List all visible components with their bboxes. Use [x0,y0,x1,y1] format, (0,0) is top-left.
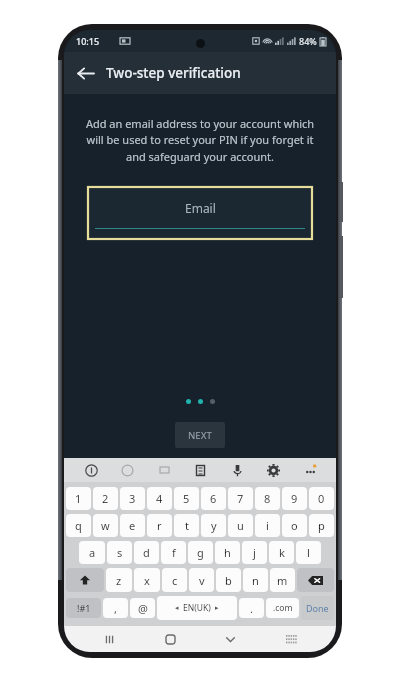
staticText: v [199,573,205,588]
button[interactable]: Voice input [227,460,247,480]
staticText: . [250,601,253,616]
button[interactable]: p [309,514,334,537]
staticText: b [225,573,232,588]
button[interactable]: NEXT [175,422,225,448]
button[interactable]: a [79,541,105,564]
staticText: 8 [264,491,271,506]
button[interactable]: 1 [66,487,91,510]
staticText: p [318,518,325,533]
button[interactable]: o [282,514,307,537]
button[interactable]: i [255,514,280,537]
button[interactable]: 2 [93,487,118,510]
button[interactable]: Emoji [117,460,137,480]
staticText: 7 [237,491,244,506]
button[interactable]: v [189,568,214,592]
button[interactable]: d [134,541,159,564]
button[interactable]: t [174,514,199,537]
button[interactable]: r [147,514,172,537]
staticText: h [224,545,231,560]
button[interactable]: !#1 [66,598,101,618]
button[interactable]: k [269,541,294,564]
staticText: 0 [318,491,325,506]
button[interactable]: Email [88,187,312,239]
staticText: c [172,573,178,588]
staticText: l [307,545,310,560]
button[interactable]: Hide keyboard [215,626,245,652]
staticText: w [101,518,110,533]
staticText: !#1 [77,602,91,614]
button[interactable]: Recent apps [94,626,124,652]
button[interactable]: @ [130,598,155,618]
staticText: ▸ [215,604,219,612]
button[interactable]: l [296,541,321,564]
staticText: 9 [291,491,298,506]
staticText: x [144,573,150,588]
button[interactable]: b [216,568,241,592]
button[interactable]: y [201,514,226,537]
button[interactable]: c [162,568,187,592]
staticText: 84% [299,35,317,47]
button[interactable]: Stickers [154,460,174,480]
staticText: @ [138,601,148,616]
staticText: m [277,573,288,588]
button[interactable]: 3 [120,487,145,510]
button[interactable]: z [106,568,132,592]
staticText: a [89,545,96,560]
button[interactable]: , [103,598,128,618]
button[interactable]: f [161,541,186,564]
staticText: g [197,545,204,560]
button[interactable]: s [107,541,132,564]
button[interactable]: Settings [263,460,283,480]
staticText: 3 [129,491,136,506]
staticText: Add an email address to your account whi… [78,116,322,165]
staticText: EN(UK) [183,602,211,614]
button[interactable]: More options [300,460,320,480]
button[interactable]: g [188,541,213,564]
button[interactable]: 4 [147,487,172,510]
button[interactable]: n [243,568,268,592]
button[interactable]: Back [64,52,106,94]
staticText: e [129,518,136,533]
button[interactable]: h [215,541,240,564]
staticText: 4 [156,491,163,506]
staticText: 5 [183,491,190,506]
button[interactable]: Keyboard layout [276,626,306,652]
staticText: u [237,518,244,533]
button[interactable]: 6 [201,487,226,510]
button[interactable]: ◂ [157,596,237,620]
button[interactable]: u [228,514,253,537]
staticText: 6 [210,491,217,506]
button[interactable]: q [66,514,91,537]
button[interactable]: Home [155,626,185,652]
button[interactable]: 0 [309,487,334,510]
button[interactable]: 8 [255,487,280,510]
button[interactable]: 5 [174,487,199,510]
button[interactable]: Done [301,596,334,620]
staticText: Done [306,602,329,614]
button[interactable]: Backspace [297,568,334,592]
button[interactable]: Shift [66,568,104,592]
button[interactable]: e [120,514,145,537]
button[interactable]: j [242,541,267,564]
button[interactable]: . [239,598,264,618]
button[interactable]: Translate [81,460,101,480]
button[interactable]: 9 [282,487,307,510]
staticText: z [116,573,122,588]
button[interactable]: w [93,514,118,537]
button[interactable]: x [134,568,160,592]
staticText: y [211,518,217,533]
button[interactable]: .com [266,598,299,618]
staticText: 10:15 [76,35,100,47]
staticText: , [114,601,117,616]
staticText: k [279,545,285,560]
staticText: r [157,518,162,533]
staticText: 1 [75,491,82,506]
staticText: q [75,518,82,533]
button[interactable]: m [270,568,295,592]
button[interactable]: Clipboard [190,460,210,480]
staticText: t [185,518,189,533]
staticText: ◂ [175,604,179,612]
button[interactable]: 7 [228,487,253,510]
staticText: d [143,545,150,560]
staticText: 2 [102,491,109,506]
